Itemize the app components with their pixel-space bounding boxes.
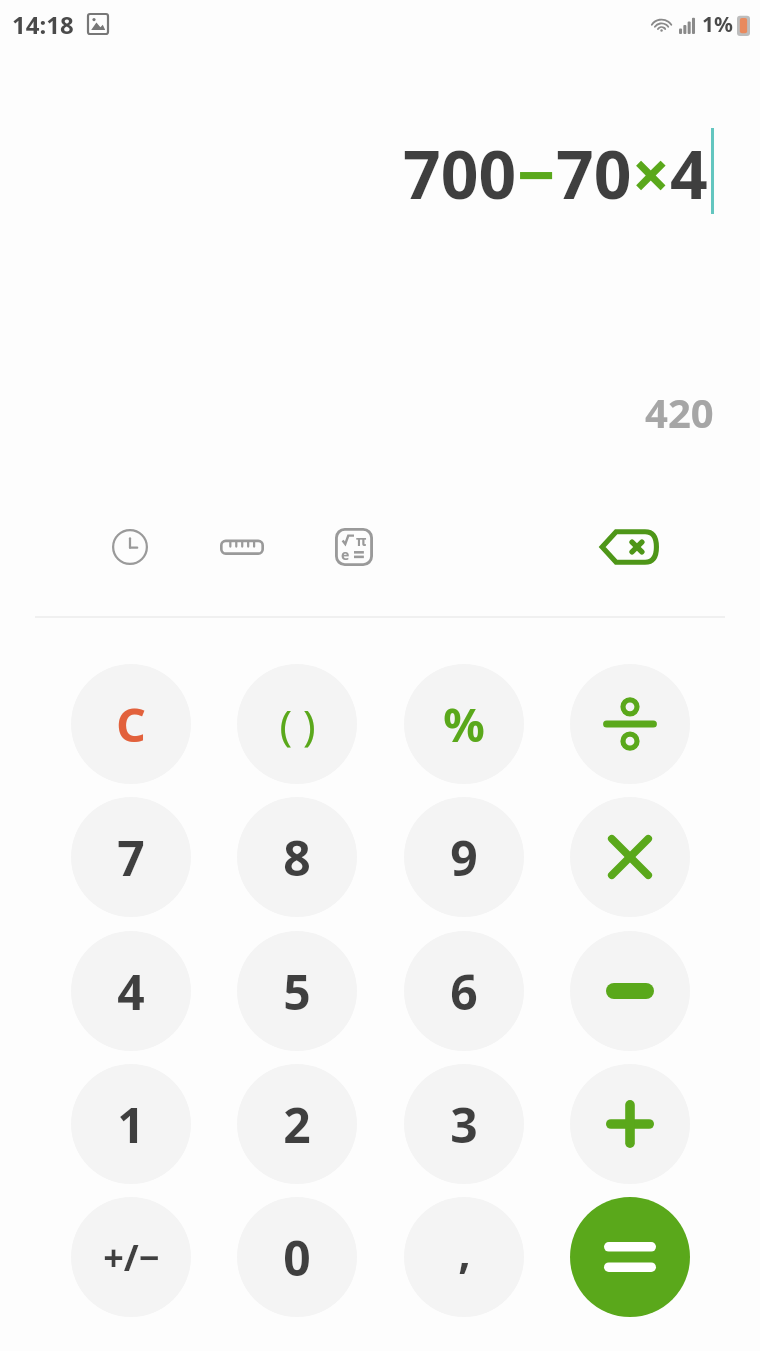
button[interactable]: 4 <box>71 931 191 1051</box>
button[interactable]: 2 <box>237 1064 357 1184</box>
button[interactable]: Minus <box>570 931 690 1051</box>
staticText: 4 <box>670 128 708 218</box>
button[interactable]: 3 <box>404 1064 524 1184</box>
staticText: 7 <box>117 825 145 890</box>
button[interactable]: History <box>98 515 162 579</box>
button[interactable]: 8 <box>237 797 357 917</box>
staticText: +/− <box>103 1233 160 1282</box>
staticText: 1% <box>702 10 733 39</box>
staticText: 70 <box>556 128 632 218</box>
staticText: 0 <box>283 1225 311 1290</box>
button[interactable]: C <box>71 664 191 784</box>
button[interactable]: % <box>404 664 524 784</box>
staticText: 4 <box>117 959 145 1024</box>
staticText: 700 <box>403 128 517 218</box>
staticText: 3 <box>450 1092 478 1157</box>
staticText: , <box>458 1221 471 1281</box>
staticText: 14:18 <box>12 8 74 41</box>
button[interactable]: Equals <box>570 1197 690 1317</box>
staticText: ( ) <box>279 696 316 753</box>
button[interactable]: +/− <box>71 1197 191 1317</box>
staticText: 6 <box>450 959 478 1024</box>
staticText: 8 <box>283 825 311 890</box>
staticText: 1 <box>117 1092 145 1157</box>
staticText: 9 <box>450 825 478 890</box>
button[interactable]: Multiply <box>570 797 690 917</box>
staticText: π <box>356 531 367 550</box>
button[interactable]: 1 <box>71 1064 191 1184</box>
button[interactable]: 6 <box>404 931 524 1051</box>
staticText: 2 <box>283 1092 311 1157</box>
staticText: 420 <box>645 385 714 439</box>
button[interactable]: Divide <box>570 664 690 784</box>
button[interactable]: Formulas <box>322 515 386 579</box>
staticText: 5 <box>283 959 311 1024</box>
staticText: − <box>517 128 556 218</box>
button[interactable]: , <box>404 1197 524 1317</box>
staticText: C <box>116 693 146 756</box>
button[interactable]: 7 <box>71 797 191 917</box>
staticText: × <box>632 128 670 218</box>
staticText: e <box>341 545 350 564</box>
button[interactable]: Backspace <box>592 512 668 582</box>
button[interactable]: ( ) <box>237 664 357 784</box>
button[interactable]: 0 <box>237 1197 357 1317</box>
button[interactable]: Unit converter <box>210 515 274 579</box>
button[interactable]: Plus <box>570 1064 690 1184</box>
staticText: % <box>443 693 485 756</box>
button[interactable]: 5 <box>237 931 357 1051</box>
button[interactable]: 9 <box>404 797 524 917</box>
